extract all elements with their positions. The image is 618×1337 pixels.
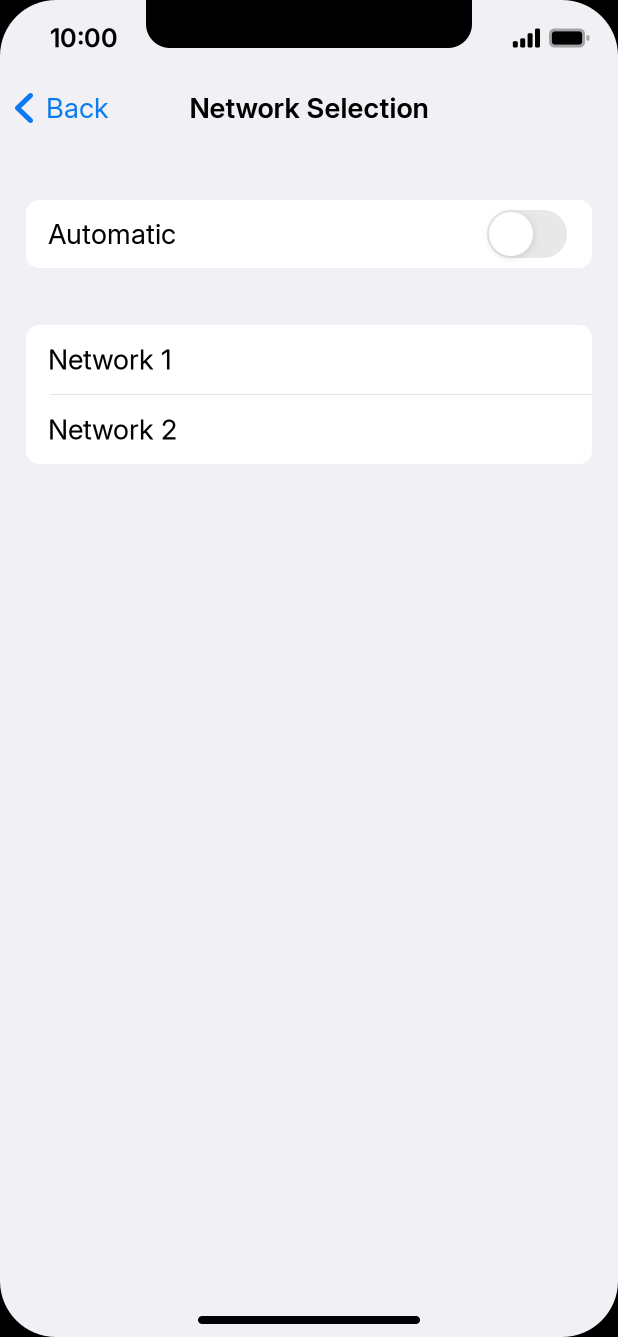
staticText: Network 1 xyxy=(48,343,172,376)
staticText: Automatic xyxy=(48,217,176,251)
staticText: Network 2 xyxy=(48,413,177,446)
staticText: 10:00 xyxy=(50,23,118,53)
staticText: Network Selection xyxy=(189,91,428,125)
button[interactable]: Back xyxy=(0,76,123,140)
staticText: Back xyxy=(46,91,109,125)
button[interactable]: Automatic xyxy=(26,200,592,268)
button[interactable]: Network 1 xyxy=(26,325,592,394)
button[interactable]: Network 2 xyxy=(26,395,592,464)
